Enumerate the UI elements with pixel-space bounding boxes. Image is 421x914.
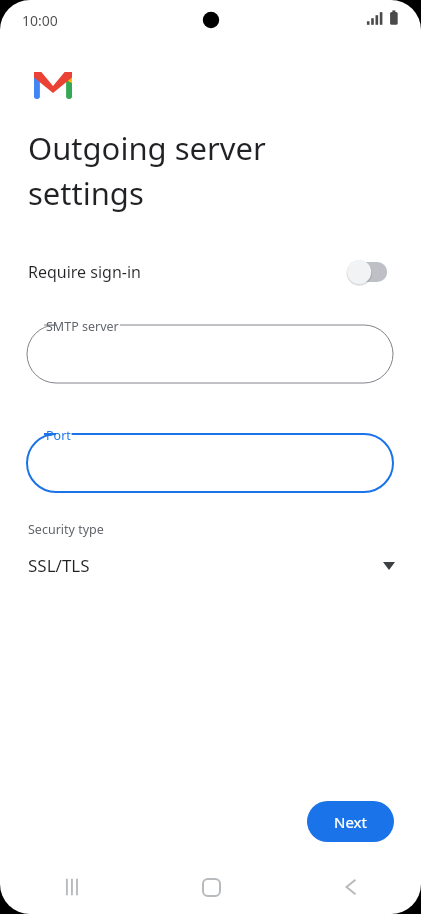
button[interactable]: Next — [307, 801, 394, 842]
staticText: SMTP server — [46, 318, 119, 335]
button[interactable]: SMTP server — [27, 311, 393, 383]
staticText: Outgoing server settings — [28, 127, 266, 214]
staticText: Port — [46, 427, 71, 444]
staticText: Next — [334, 812, 367, 832]
button[interactable]: Require sign-in toggle — [343, 257, 395, 287]
staticText: 10:00 — [22, 11, 58, 30]
staticText: Require sign-in — [28, 261, 141, 283]
button[interactable]: Require sign-in — [0, 251, 421, 293]
button[interactable]: Recent apps — [0, 860, 141, 914]
button[interactable]: Security type — [0, 519, 421, 583]
staticText: SSL/TLS — [28, 554, 90, 577]
button[interactable]: Home — [141, 860, 281, 914]
staticText: Security type — [28, 521, 104, 538]
button[interactable]: Back — [281, 860, 421, 914]
button[interactable]: Port — [27, 420, 393, 492]
